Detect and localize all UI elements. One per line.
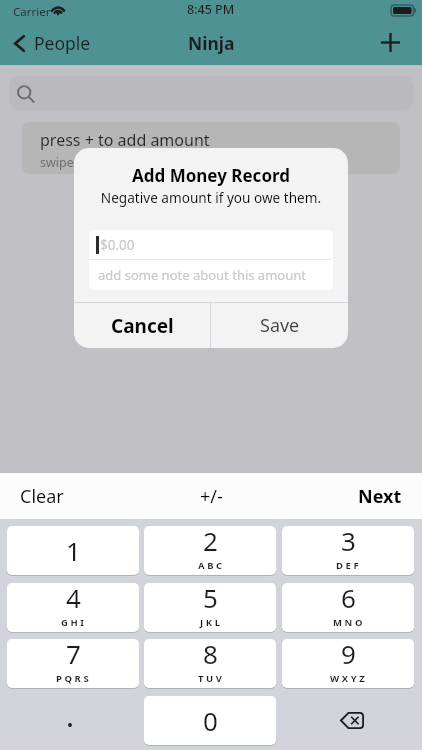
staticText: Ninja	[188, 31, 235, 55]
staticText: 9	[341, 639, 356, 671]
staticText: JKL	[200, 616, 223, 629]
button[interactable]: People	[8, 25, 99, 61]
button[interactable]: 0	[144, 696, 276, 745]
button[interactable]: 7	[7, 639, 139, 688]
button[interactable]: $0.00	[89, 230, 333, 259]
button[interactable]: 4	[7, 583, 139, 632]
staticText: 6	[341, 583, 356, 615]
staticText: Add Money Record	[74, 164, 348, 187]
button[interactable]: Add	[368, 20, 412, 64]
button[interactable]: 8	[144, 639, 276, 688]
button[interactable]: 6	[282, 583, 414, 632]
staticText: $0.00	[100, 236, 135, 254]
staticText: DEF	[336, 559, 362, 572]
staticText: 7	[66, 639, 81, 671]
button[interactable]: 3	[282, 526, 414, 575]
button[interactable]: add some note about this amount	[89, 260, 333, 290]
staticText: ABC	[198, 559, 225, 572]
staticText: swipe left to delete	[40, 154, 152, 171]
staticText: MNO	[333, 616, 365, 629]
button[interactable]: Search	[9, 76, 413, 110]
button[interactable]: 2	[144, 526, 276, 575]
staticText: GHI	[61, 616, 87, 629]
staticText: 0	[203, 703, 218, 738]
staticText: Negative amount if you owe them.	[74, 188, 348, 207]
staticText: press + to add amount	[40, 129, 210, 151]
staticText: 4	[66, 583, 81, 615]
staticText: 1	[66, 533, 81, 568]
staticText: TUV	[198, 672, 225, 685]
button[interactable]: press + to add amount	[22, 122, 400, 174]
button[interactable]: Save	[211, 303, 348, 348]
staticText: 3	[341, 526, 356, 558]
staticText: PQRS	[56, 672, 92, 685]
button[interactable]: 5	[144, 583, 276, 632]
staticText: Save	[260, 313, 300, 338]
staticText: WXYZ	[330, 672, 368, 685]
button[interactable]: 1	[7, 526, 139, 575]
staticText: Carrier	[13, 4, 51, 20]
staticText: 8:45 PM	[187, 1, 235, 18]
button[interactable]: Decimal point	[7, 696, 139, 745]
staticText: 8	[203, 639, 218, 671]
staticText: add some note about this amount	[98, 266, 306, 284]
button[interactable]: 9	[282, 639, 414, 688]
staticText: 2	[203, 526, 218, 558]
staticText: People	[34, 31, 91, 55]
staticText: Cancel	[111, 313, 174, 339]
staticText: 5	[203, 583, 218, 615]
button[interactable]: Next	[338, 474, 422, 519]
button[interactable]: Clear	[0, 474, 84, 519]
button[interactable]: +/-	[182, 474, 241, 519]
button[interactable]: Cancel	[74, 303, 210, 348]
button[interactable]: Backspace	[282, 696, 414, 745]
